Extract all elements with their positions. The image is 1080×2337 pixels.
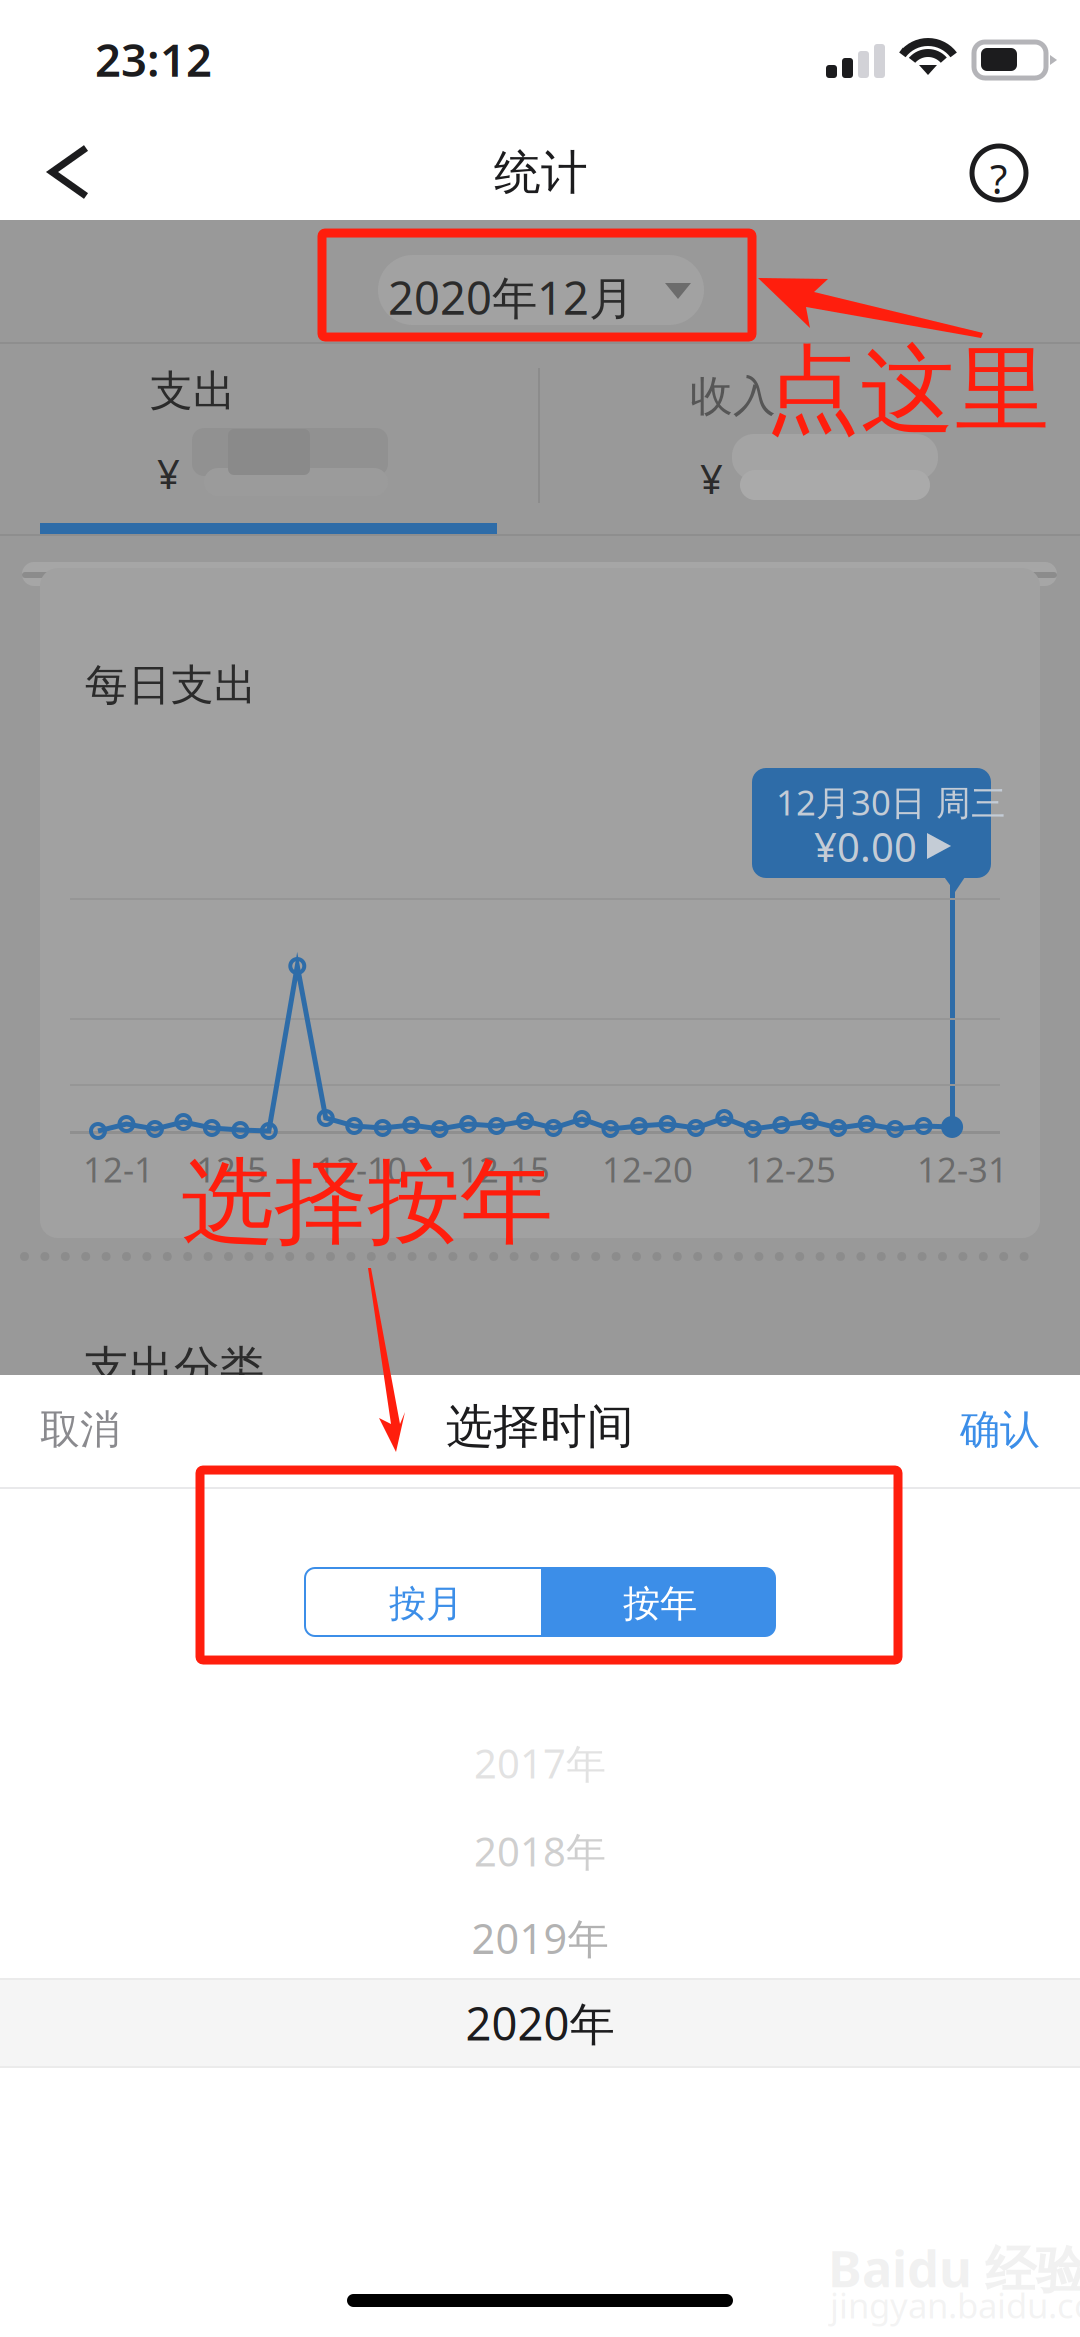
staticText: 按年: [623, 1581, 697, 1627]
staticText: 支出: [150, 365, 236, 417]
staticText: 2018年: [474, 1824, 606, 1877]
staticText: 2020年: [465, 1993, 614, 2053]
button[interactable]: 按月: [305, 1568, 541, 1636]
staticText: 12-10: [316, 1146, 407, 1192]
staticText: 12-5: [196, 1146, 267, 1192]
staticText: 2020年12月: [388, 267, 634, 327]
staticText: Baidu 经验: [828, 2234, 1080, 2301]
staticText: 2017年: [474, 1736, 606, 1789]
staticText: 确认: [960, 1405, 1040, 1454]
staticText: ¥: [157, 447, 180, 500]
staticText: 按月: [389, 1581, 463, 1627]
button[interactable]: 2018年: [0, 1807, 1080, 1895]
staticText: jingyan.baidu.com: [830, 2282, 1080, 2328]
button[interactable]: 2020年12月: [378, 255, 704, 325]
staticText: 12-31: [917, 1146, 1008, 1192]
button[interactable]: 取消: [0, 1375, 220, 1487]
staticText: 每日支出: [85, 659, 257, 711]
button[interactable]: 2019年: [0, 1894, 1080, 1982]
staticText: 12-20: [602, 1146, 693, 1192]
button[interactable]: 确认: [860, 1375, 1080, 1487]
staticText: 12-1: [83, 1146, 154, 1192]
button[interactable]: Help: [963, 137, 1035, 209]
staticText: 12月30日 周三: [776, 779, 1006, 825]
staticText: 选择按年: [181, 1145, 553, 1260]
staticText: 12-15: [459, 1146, 550, 1192]
staticText: 2019年: [471, 1911, 608, 1965]
staticText: 点这里: [765, 332, 1050, 448]
button[interactable]: 2020年: [0, 1979, 1080, 2067]
staticText: 统计: [494, 144, 588, 201]
staticText: 支出分类: [84, 1340, 264, 1396]
staticText: 取消: [40, 1405, 120, 1454]
staticText: ?: [990, 152, 1007, 205]
staticText: 选择时间: [446, 1398, 634, 1455]
button[interactable]: Back: [24, 130, 108, 214]
staticText: 23:12: [95, 29, 212, 89]
staticText: ¥: [700, 452, 723, 505]
staticText: 12-25: [745, 1146, 836, 1192]
staticText: ¥0.00: [814, 820, 917, 873]
button[interactable]: 按年: [541, 1568, 775, 1636]
staticText: 收入: [690, 370, 776, 422]
